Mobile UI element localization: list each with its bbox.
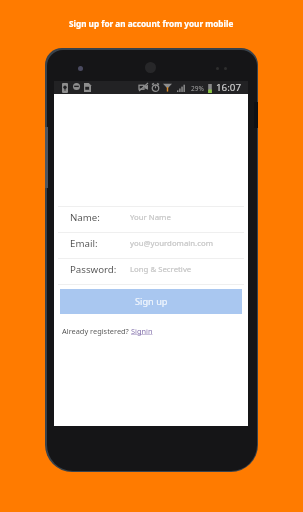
staticText: Password: [70,263,117,276]
staticText: Your Name [130,212,171,223]
staticText: 29% [191,84,204,93]
staticText: Email: [70,237,98,250]
staticText: Sign up for an account from your mobile [69,18,234,29]
button[interactable]: Already registered? [62,326,153,336]
button[interactable]: Password: [54,259,248,285]
staticText: you@yourdomain.com [130,238,213,249]
staticText: Long & Secretive [130,264,192,275]
button[interactable]: Name: [54,207,248,233]
staticText: 16:07 [216,81,242,94]
staticText: Signin [131,326,153,336]
button[interactable]: Email: [54,233,248,259]
staticText: Already registered? [62,326,131,336]
staticText: Name: [70,211,100,224]
button[interactable]: Sign up [60,289,242,314]
staticText: Sign up [135,295,168,308]
